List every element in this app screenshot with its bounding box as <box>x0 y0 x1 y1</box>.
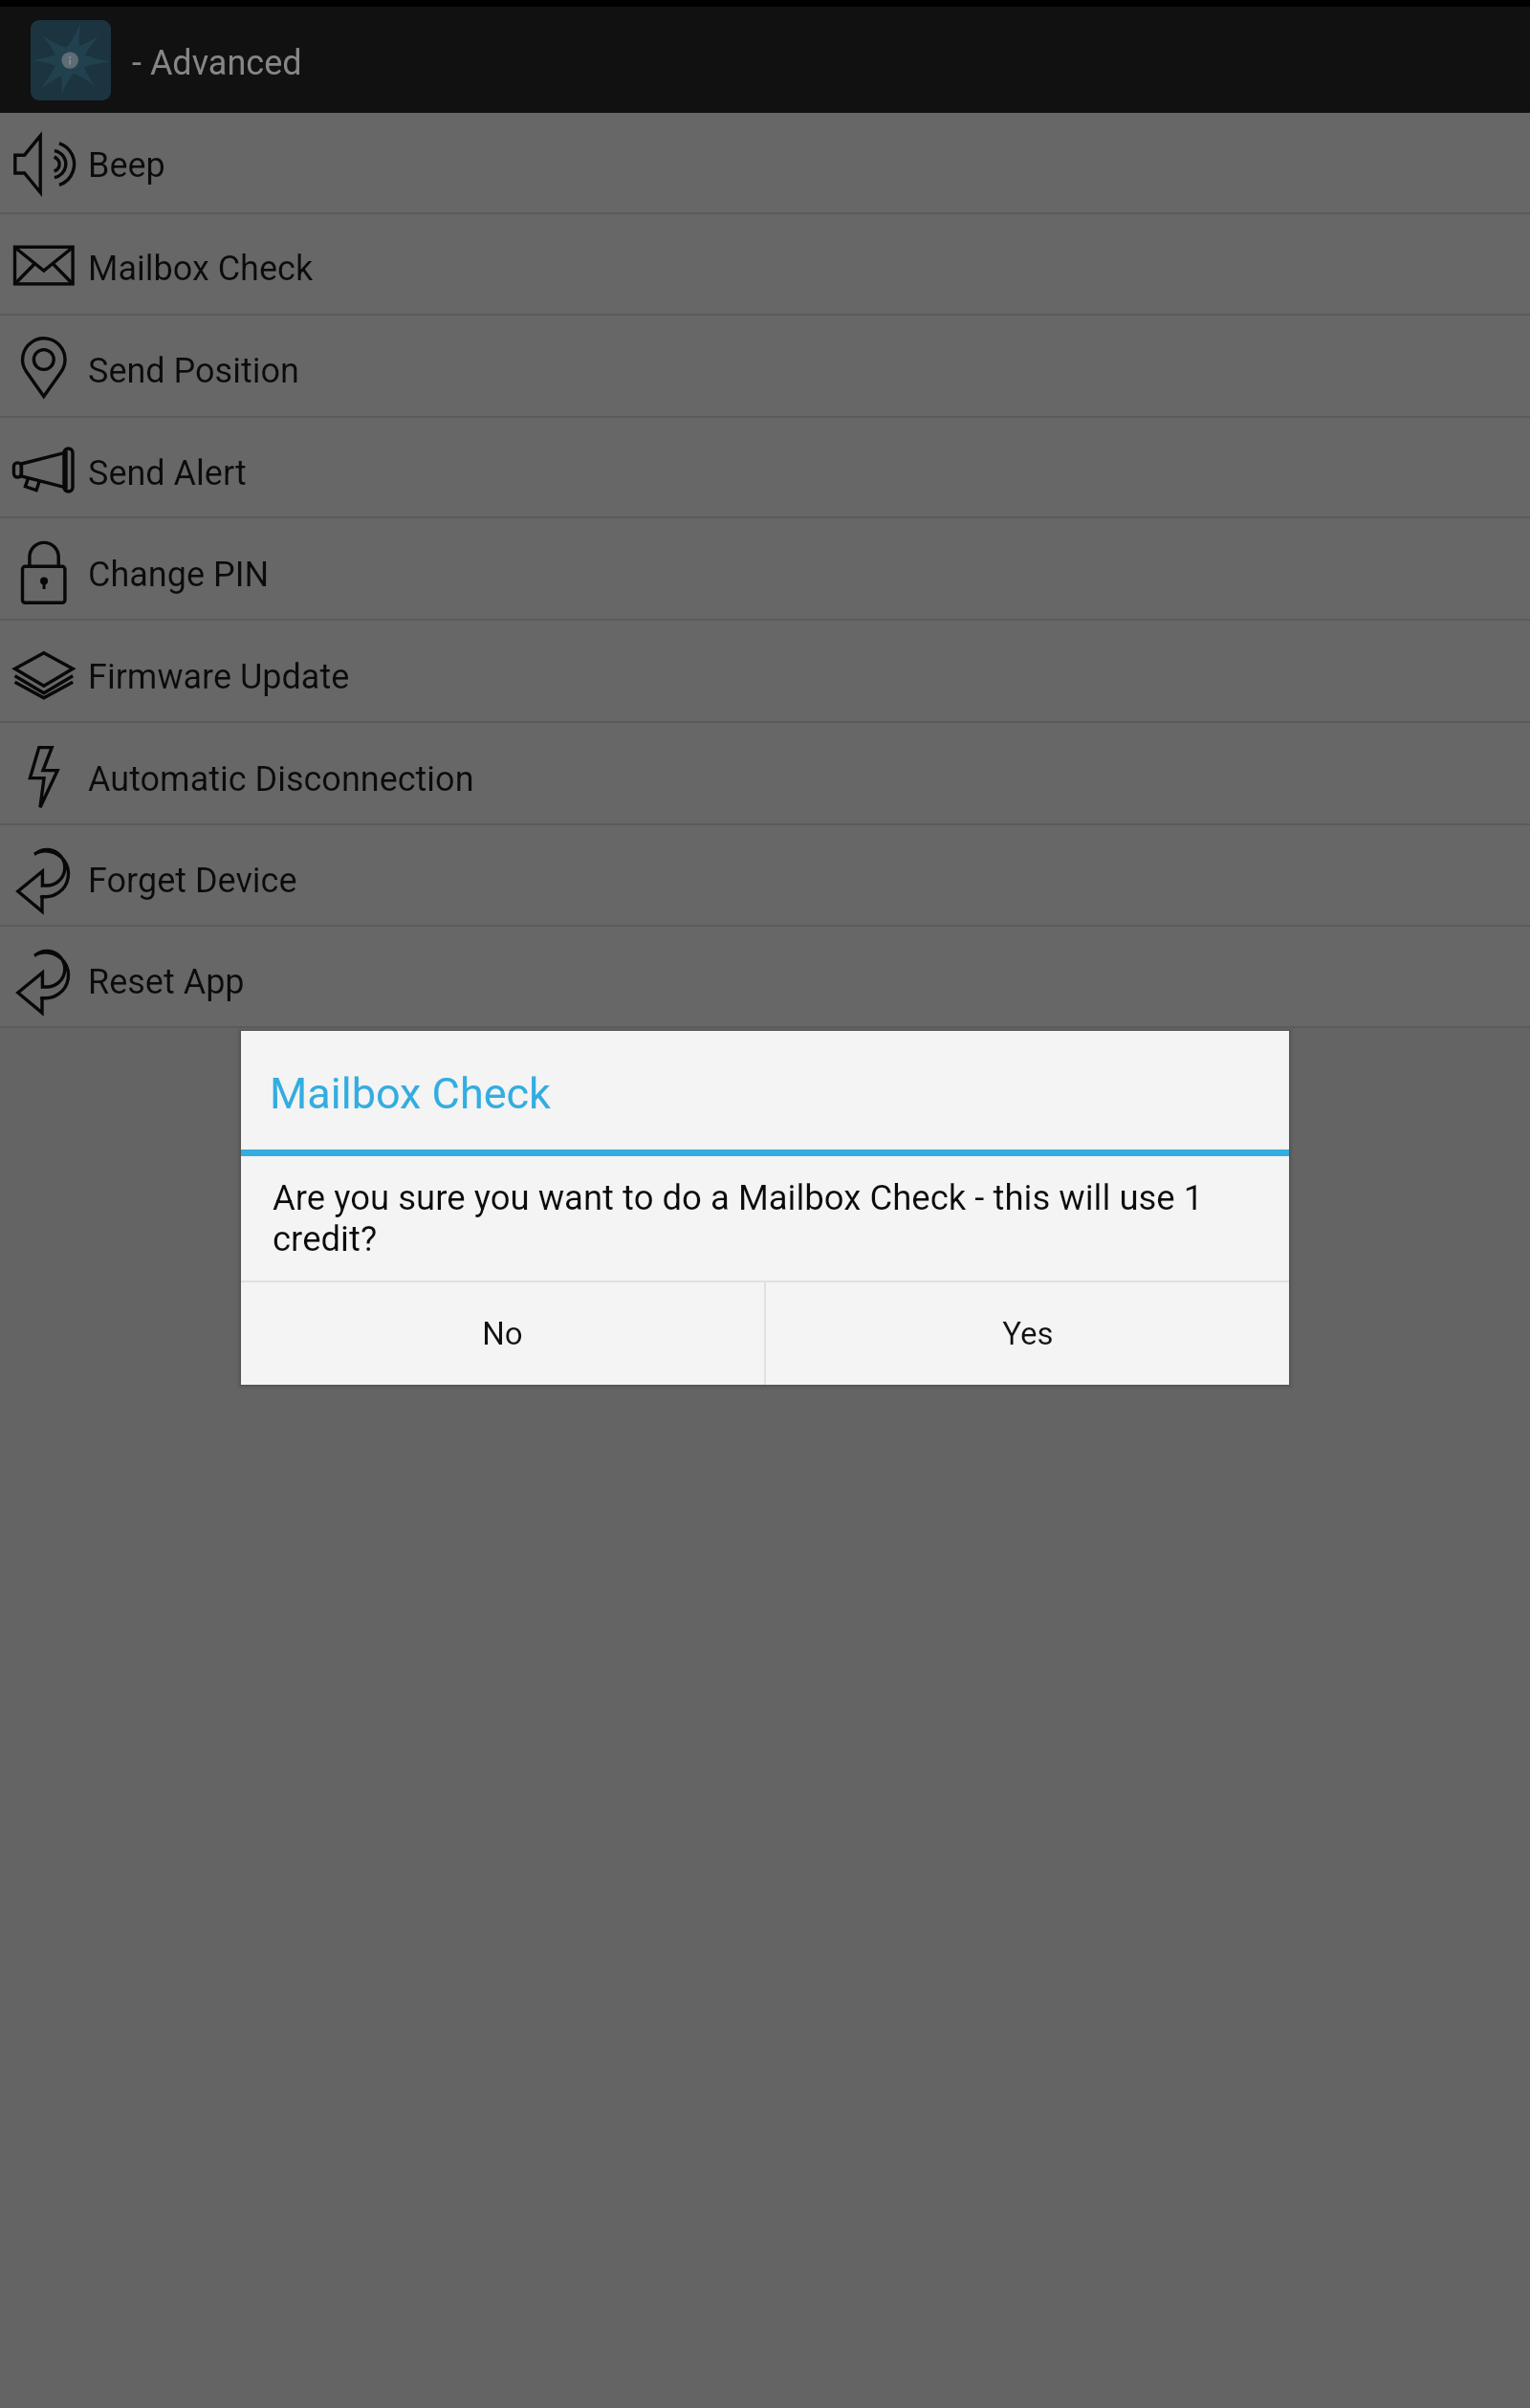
button[interactable]: Yes <box>766 1282 1289 1385</box>
staticText: Reset App <box>88 962 245 1002</box>
staticText: Forget Device <box>88 861 297 901</box>
staticText: Change PIN <box>88 555 270 595</box>
staticText: Are you sure you want to do a Mailbox Ch… <box>273 1177 1251 1259</box>
staticText: Yes <box>1002 1315 1054 1352</box>
button[interactable]: Forget Device <box>0 823 1530 925</box>
staticText: Beep <box>88 145 165 186</box>
button[interactable]: Automatic Disconnection <box>0 721 1530 823</box>
staticText: Send Alert <box>88 453 247 493</box>
staticText: No <box>482 1315 523 1352</box>
button[interactable]: Change PIN <box>0 516 1530 619</box>
button[interactable]: Reset App <box>0 925 1530 1026</box>
button[interactable]: Send Alert <box>0 416 1530 516</box>
staticText: Mailbox Check <box>270 1068 551 1119</box>
button[interactable]: App icon <box>31 20 111 100</box>
button[interactable]: Firmware Update <box>0 619 1530 721</box>
staticText: Firmware Update <box>88 657 350 697</box>
staticText: Automatic Disconnection <box>88 759 474 799</box>
staticText: Send Position <box>88 351 299 391</box>
button[interactable]: Mailbox Check <box>0 212 1530 314</box>
button[interactable]: Send Position <box>0 314 1530 416</box>
staticText: Mailbox Check <box>88 249 314 289</box>
button[interactable]: No <box>241 1282 764 1385</box>
staticText: - Advanced <box>132 43 302 83</box>
button[interactable]: Beep <box>0 113 1530 212</box>
